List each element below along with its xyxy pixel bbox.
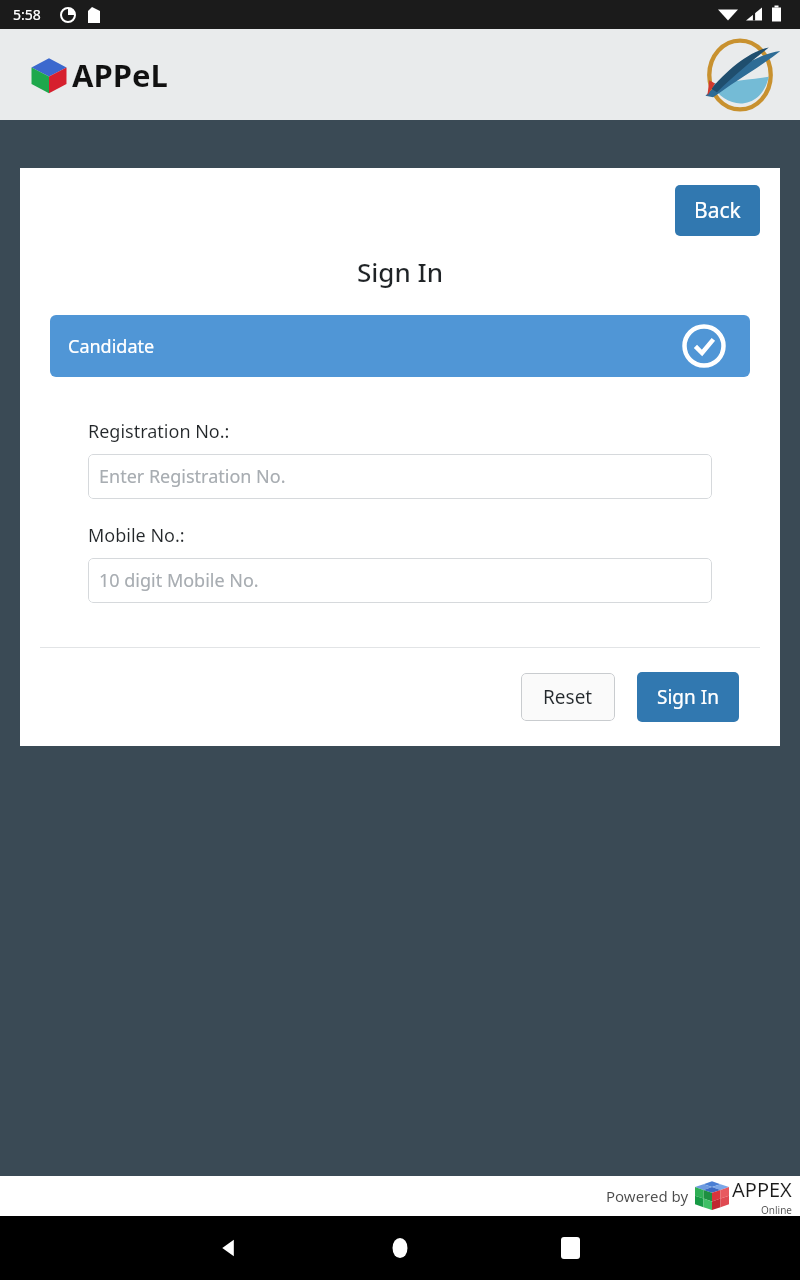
staticText: APPEX [732, 1176, 792, 1203]
button[interactable]: Home [377, 1225, 423, 1271]
staticText: 5:58 [13, 5, 41, 24]
staticText: Sign In [20, 254, 780, 289]
staticText: Reset [543, 684, 593, 710]
button[interactable]: APPeL [30, 54, 168, 96]
staticText: Registration No.: [88, 419, 230, 444]
staticText: Back [694, 196, 741, 225]
staticText: Online [761, 1203, 792, 1216]
button[interactable]: 10 digit Mobile No. [88, 558, 712, 603]
button[interactable]: Sign In [637, 672, 739, 722]
button[interactable]: NPTEL logo [692, 32, 788, 118]
staticText: 10 digit Mobile No. [99, 568, 259, 593]
button[interactable]: Recents [547, 1225, 593, 1271]
button[interactable]: Back [206, 1225, 252, 1271]
staticText: Mobile No.: [88, 523, 185, 548]
staticText: Sign In [657, 684, 719, 710]
button[interactable]: Candidate [50, 315, 750, 377]
staticText: Enter Registration No. [99, 464, 286, 489]
button[interactable]: Back [675, 185, 760, 236]
button[interactable]: Enter Registration No. [88, 454, 712, 499]
staticText: Candidate [68, 334, 155, 359]
staticText: Powered by [606, 1186, 689, 1206]
button[interactable]: Reset [521, 673, 615, 721]
staticText: APPeL [72, 54, 168, 96]
